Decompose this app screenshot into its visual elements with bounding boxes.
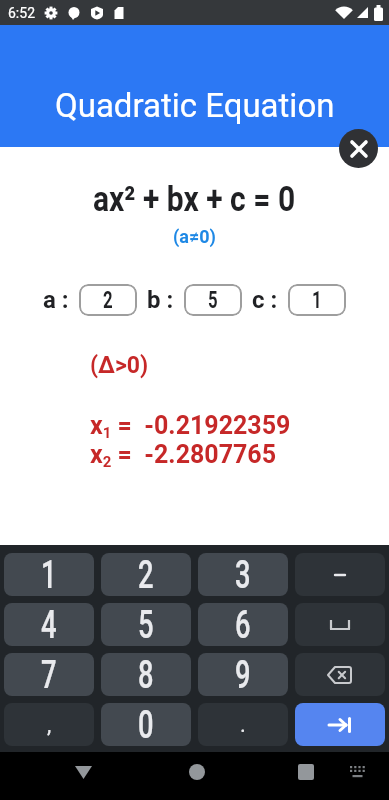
button[interactable]: 8 bbox=[101, 653, 191, 696]
button[interactable] bbox=[295, 553, 385, 596]
button[interactable] bbox=[339, 129, 378, 168]
button[interactable] bbox=[298, 764, 314, 780]
button[interactable] bbox=[75, 765, 92, 780]
staticText: c : bbox=[252, 286, 278, 314]
staticText: ax² + bx + c = 0 bbox=[93, 178, 296, 219]
staticText: 6:52 bbox=[8, 5, 35, 21]
button[interactable] bbox=[189, 764, 205, 780]
staticText: b : bbox=[147, 286, 174, 314]
button[interactable]: 9 bbox=[198, 653, 288, 696]
staticText: x1 = -0.21922359 bbox=[90, 411, 291, 441]
button[interactable]: 4 bbox=[4, 603, 94, 646]
staticText: 3 bbox=[235, 553, 251, 596]
staticText: 1 bbox=[41, 553, 57, 596]
staticText: 7 bbox=[41, 653, 57, 696]
button[interactable]: 3 bbox=[198, 553, 288, 596]
staticText: 1 bbox=[312, 286, 322, 314]
button[interactable]: 6 bbox=[198, 603, 288, 646]
button[interactable] bbox=[295, 703, 385, 746]
staticText: 2 bbox=[138, 553, 154, 596]
button[interactable]: 1 bbox=[288, 284, 346, 316]
staticText: 6 bbox=[235, 603, 251, 646]
button[interactable]: 0 bbox=[101, 703, 191, 746]
button[interactable]: 2 bbox=[79, 284, 137, 316]
staticText: 8 bbox=[138, 653, 154, 696]
staticText: 5 bbox=[208, 286, 218, 314]
staticText: a : bbox=[43, 286, 69, 314]
staticText: 5 bbox=[138, 603, 154, 646]
button[interactable]: 2 bbox=[101, 553, 191, 596]
staticText: (a≠0) bbox=[173, 226, 216, 247]
button[interactable]: 5 bbox=[184, 284, 242, 316]
staticText: . bbox=[240, 712, 246, 738]
button[interactable] bbox=[295, 653, 385, 696]
staticText: 0 bbox=[138, 703, 154, 746]
staticText: 2 bbox=[103, 286, 113, 314]
staticText: , bbox=[47, 712, 52, 738]
button[interactable] bbox=[350, 766, 366, 778]
staticText: (Δ>0) bbox=[90, 352, 149, 379]
button[interactable]: 7 bbox=[4, 653, 94, 696]
button[interactable]: 5 bbox=[101, 603, 191, 646]
button[interactable]: . bbox=[198, 703, 288, 746]
staticText: 9 bbox=[235, 653, 251, 696]
staticText: 4 bbox=[41, 603, 57, 646]
button[interactable]: 1 bbox=[4, 553, 94, 596]
staticText: x2 = -2.2807765 bbox=[90, 440, 277, 470]
button[interactable] bbox=[295, 603, 385, 646]
staticText: Quadratic Equation bbox=[55, 86, 335, 125]
button[interactable]: , bbox=[4, 703, 94, 746]
